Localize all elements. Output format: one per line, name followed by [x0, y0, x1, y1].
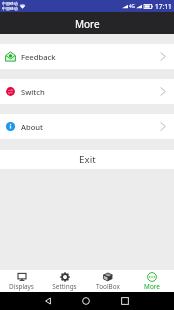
- staticText: More: [75, 17, 100, 31]
- staticText: Feedback: [21, 52, 56, 62]
- staticText: Settings: [52, 282, 77, 291]
- staticText: More: [144, 282, 160, 291]
- button[interactable]: More: [130, 272, 174, 291]
- staticText: Displays: [9, 282, 34, 291]
- button[interactable]: Exit: [0, 150, 174, 169]
- staticText: Exit: [79, 153, 96, 166]
- button[interactable]: Back: [36, 292, 60, 310]
- button[interactable]: Settings: [43, 272, 86, 291]
- staticText: ToolBox: [96, 282, 120, 291]
- button[interactable]: ToolBox: [86, 272, 130, 291]
- button[interactable]: Displays: [0, 272, 43, 291]
- button[interactable]: About: [0, 114, 174, 139]
- staticText: 中国移动: [2, 6, 18, 11]
- staticText: About: [21, 122, 43, 132]
- staticText: 4G: [129, 3, 135, 9]
- button[interactable]: Recents: [113, 292, 137, 310]
- staticText: 中国移动: [2, 1, 18, 6]
- staticText: 17:11: [155, 2, 172, 11]
- staticText: Switch: [21, 87, 45, 97]
- button[interactable]: Feedback: [0, 44, 174, 69]
- button[interactable]: Home: [74, 292, 98, 310]
- button[interactable]: Switch: [0, 79, 174, 104]
